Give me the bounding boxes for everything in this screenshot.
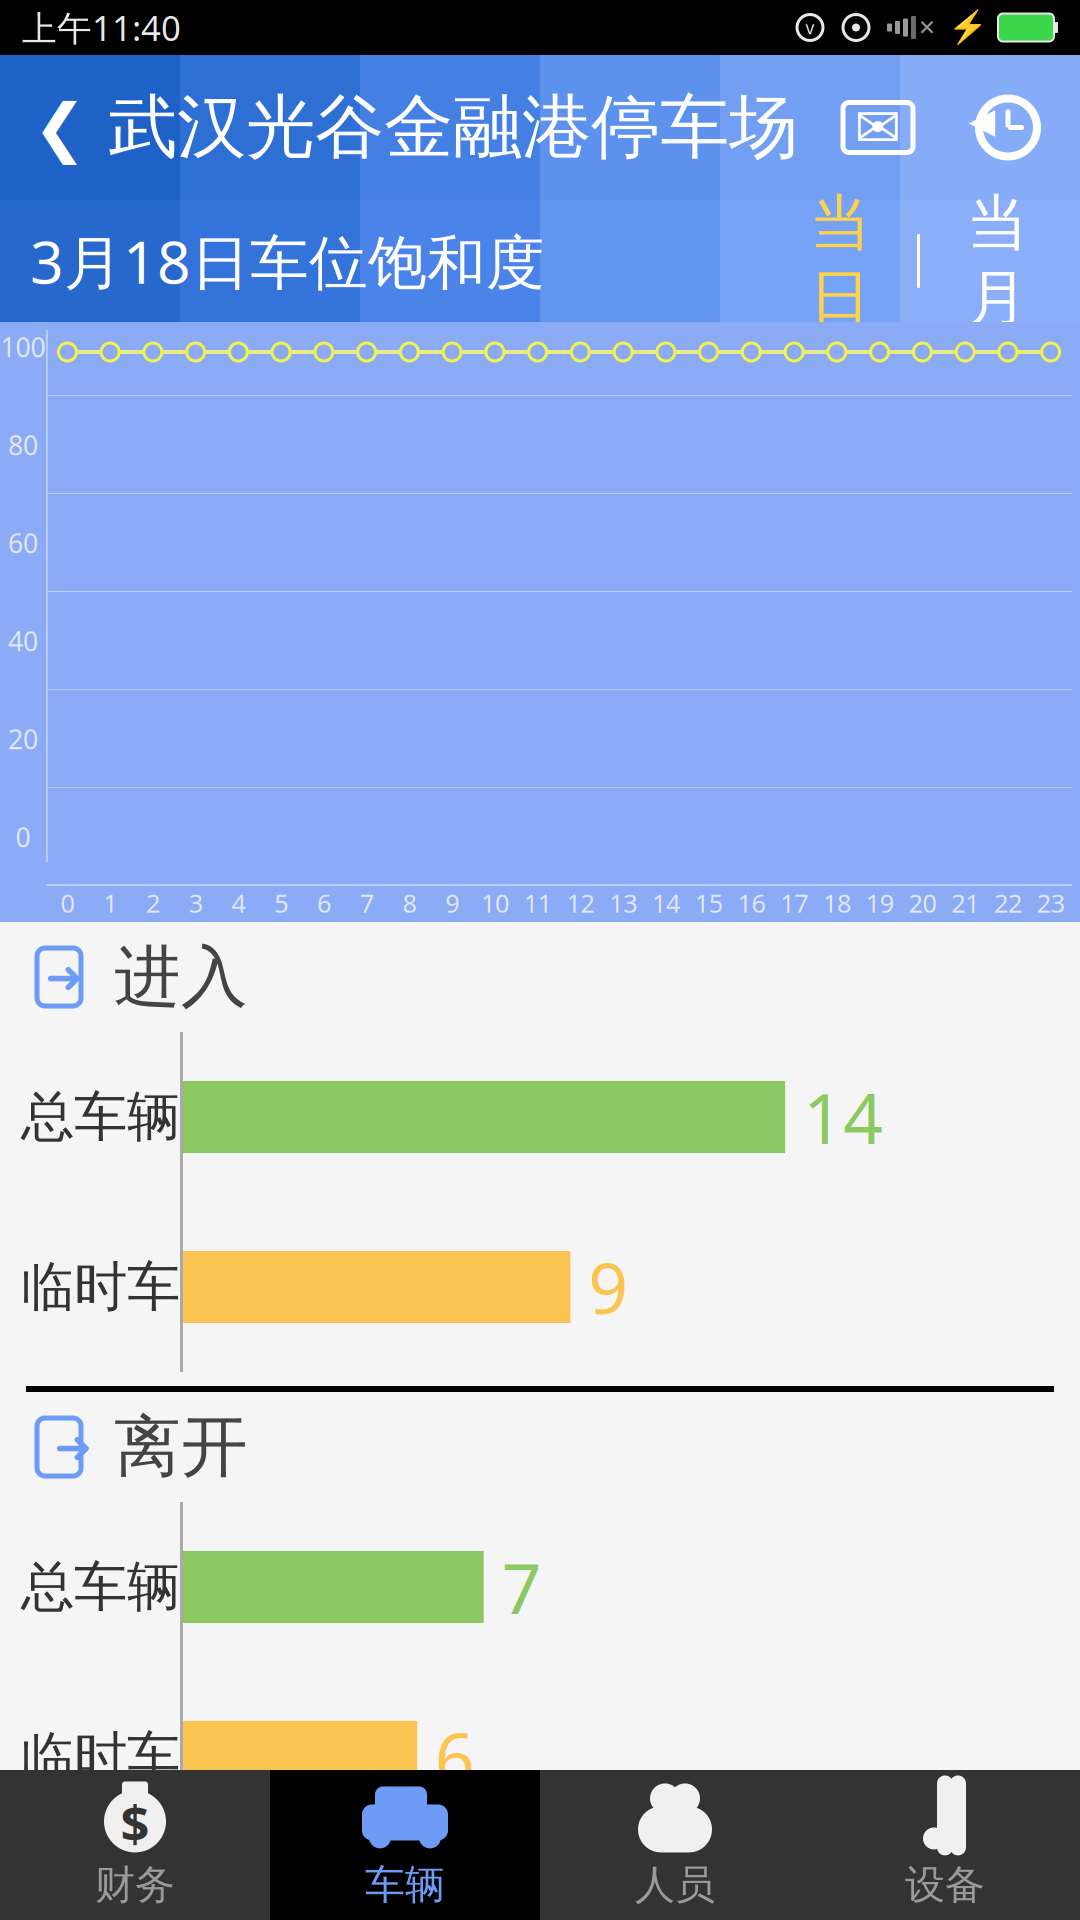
staticText: 14 [652,886,680,920]
staticText: 6 [435,1711,475,1803]
staticText: 1 [103,886,117,920]
staticText: 9 [445,886,459,920]
staticText: 16 [737,886,765,920]
staticText: 当日 [809,186,870,336]
staticText: 22 [994,886,1022,920]
staticText: ⚡ [948,9,988,46]
button[interactable]: 当日 [785,226,895,296]
staticText: 20 [908,886,936,920]
staticText: 0 [15,819,30,855]
staticText: 13 [609,886,637,920]
staticText: 100 [0,329,45,365]
staticText: 18 [823,886,851,920]
staticText: 上午11:40 [22,4,181,50]
staticText: 3 [189,886,203,920]
staticText: 总车辆 [21,1554,180,1620]
staticText: 临时车 [21,1724,180,1790]
staticText: 15 [695,886,723,920]
staticText: 0 [60,886,74,920]
staticText: 7 [502,1541,542,1633]
staticText: 8 [402,886,416,920]
staticText: 2 [146,886,160,920]
staticText: ◀ [968,101,995,140]
staticText: 20 [8,721,38,757]
staticText: 60 [8,525,38,561]
staticText: 进入 [114,936,248,1018]
staticText: 离开 [114,1406,248,1488]
staticText: 19 [866,886,894,920]
staticText: 7 [360,886,374,920]
staticText: ✉ [854,96,901,159]
staticText: v [805,16,814,39]
staticText: 设备 [905,1860,985,1909]
button[interactable]: 设备 [810,1770,1080,1920]
button[interactable]: 当月 [942,226,1052,296]
staticText: 人员 [635,1860,715,1909]
staticText: 车辆 [365,1860,445,1909]
staticText: 14 [803,1071,883,1163]
staticText: 5 [274,886,288,920]
staticText: 3月18日车位饱和度 [30,222,545,300]
staticText: ➜ [54,1421,92,1473]
button[interactable]: Messages [840,99,916,155]
staticText: 4 [231,886,245,920]
staticText: 当月 [966,186,1027,336]
staticText: 10 [481,886,509,920]
staticText: 9 [588,1241,628,1333]
staticText: 武汉光谷金融港停车场 [108,85,798,170]
button[interactable]: 车辆 [270,1770,540,1920]
button[interactable]: Back [18,72,102,182]
staticText: ❮ [33,91,87,164]
staticText: 财务 [95,1860,175,1909]
staticText: 21 [951,886,979,920]
staticText: $ [120,1789,149,1856]
staticText: 23 [1037,886,1065,920]
staticText: ✕ [918,15,936,40]
staticText: 17 [780,886,808,920]
staticText: 80 [8,427,38,463]
button[interactable]: 人员 [540,1770,810,1920]
staticText: 6 [317,886,331,920]
staticText: 40 [8,623,38,659]
staticText: 总车辆 [21,1084,180,1150]
staticText: 11 [524,886,552,920]
button[interactable]: $ [0,1770,270,1920]
staticText: ➜ [45,951,83,1003]
staticText: 12 [566,886,594,920]
staticText: 临时车 [21,1254,180,1320]
button[interactable]: History [972,91,1044,163]
